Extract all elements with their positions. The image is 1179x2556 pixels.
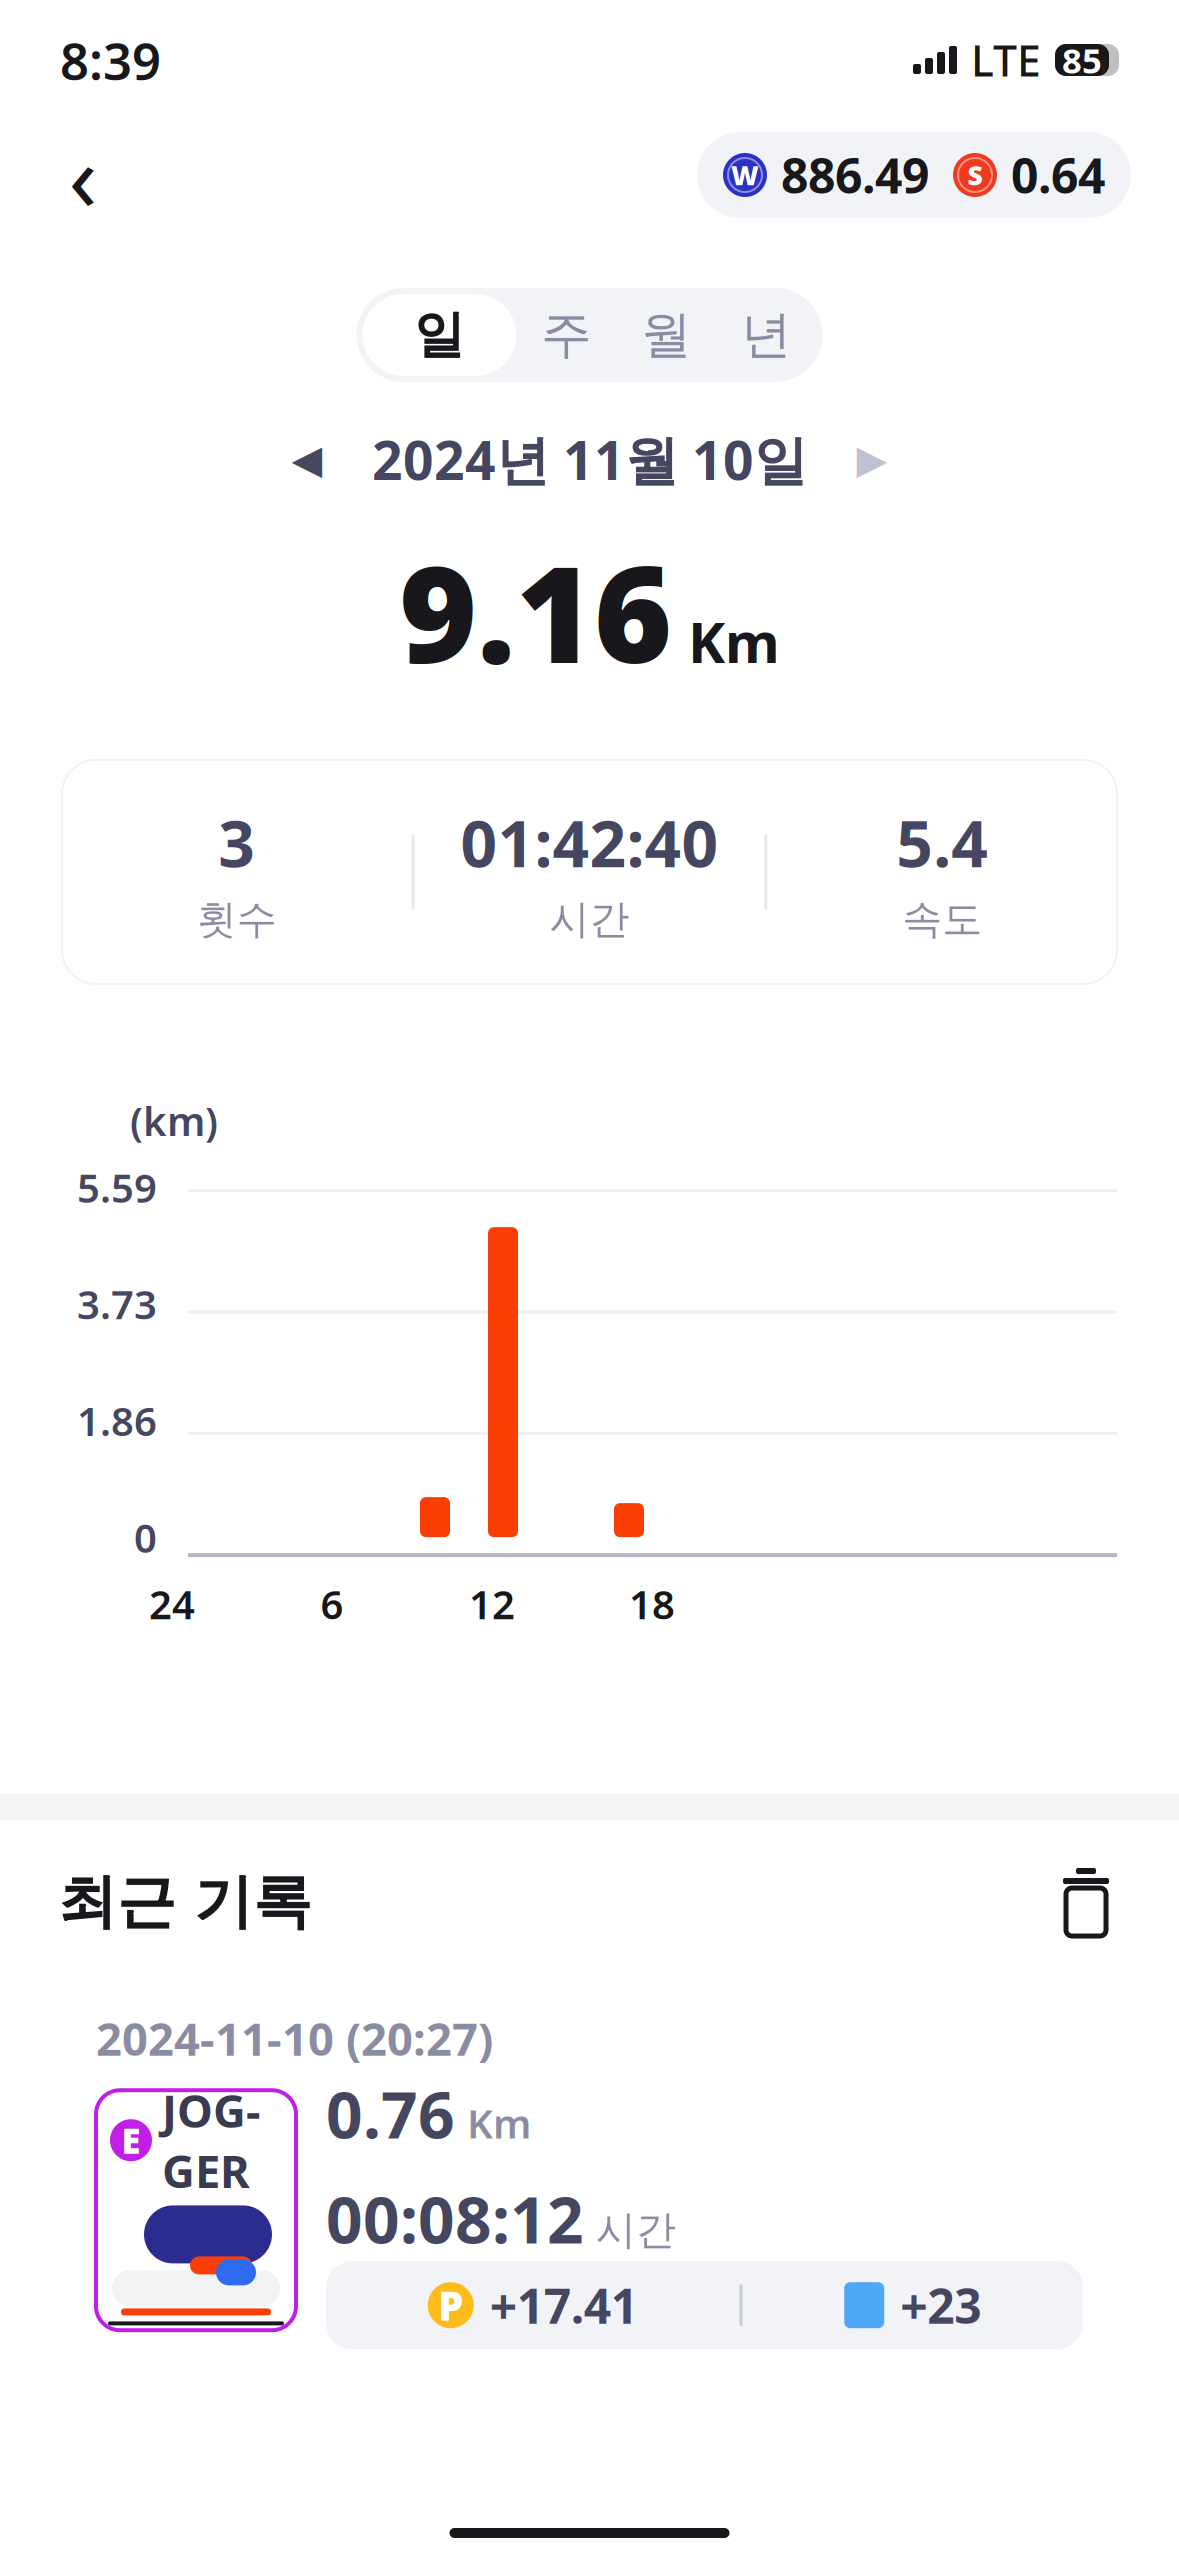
- staticText: 18: [629, 1577, 675, 1630]
- staticText: 9.16: [399, 523, 672, 700]
- staticText: ▶: [856, 437, 887, 482]
- staticText: +17.41: [490, 2273, 638, 2337]
- staticText: 0.76: [326, 2071, 455, 2156]
- button[interactable]: Back: [48, 135, 118, 215]
- staticText: ‹: [68, 113, 97, 237]
- staticText: 시간: [596, 2206, 676, 2255]
- staticText: 1.86: [77, 1394, 157, 1447]
- button[interactable]: 2024-11-10 (20:27): [62, 1970, 1117, 2364]
- staticText: LTE: [971, 32, 1041, 88]
- staticText: +23: [900, 2273, 981, 2337]
- staticText: 년: [741, 304, 792, 366]
- button[interactable]: Next day: [837, 424, 907, 494]
- button[interactable]: 주: [516, 294, 616, 376]
- staticText: 5.59: [77, 1161, 157, 1214]
- staticText: 시간: [549, 895, 629, 944]
- staticText: 12: [469, 1577, 515, 1630]
- button[interactable]: 일: [362, 294, 516, 376]
- staticText: 주: [541, 304, 592, 366]
- staticText: 8:39: [60, 26, 161, 94]
- staticText: 일: [414, 304, 465, 366]
- staticText: S: [967, 157, 982, 193]
- staticText: E: [121, 2117, 140, 2163]
- button[interactable]: 월: [616, 294, 716, 376]
- button[interactable]: Previous day: [272, 424, 342, 494]
- staticText: 886.49: [781, 143, 929, 207]
- staticText: 최근 기록: [58, 1866, 312, 1938]
- button[interactable]: 년: [716, 294, 816, 376]
- staticText: 85: [1062, 37, 1102, 83]
- button[interactable]: W: [697, 132, 1131, 218]
- staticText: 01:42:40: [460, 800, 718, 885]
- staticText: W: [731, 157, 759, 193]
- staticText: P: [438, 2279, 463, 2332]
- staticText: JOGGER: [162, 2080, 261, 2200]
- staticText: 24: [149, 1577, 195, 1630]
- staticText: 5.4: [896, 800, 988, 885]
- staticText: Km: [688, 604, 780, 679]
- staticText: Km: [467, 2096, 531, 2150]
- staticText: 횟수: [197, 895, 277, 944]
- button[interactable]: Delete records: [1051, 1864, 1121, 1940]
- staticText: 속도: [902, 895, 982, 944]
- staticText: ◀: [291, 437, 322, 482]
- staticText: 3: [218, 800, 255, 885]
- staticText: 0.64: [1011, 143, 1105, 207]
- staticText: (km): [130, 1094, 218, 1147]
- staticText: 3.73: [77, 1277, 157, 1330]
- staticText: 00:08:12: [326, 2176, 584, 2261]
- staticText: 6: [320, 1577, 343, 1630]
- staticText: 2024-11-10 (20:27): [96, 2008, 493, 2068]
- staticText: 0: [134, 1511, 157, 1564]
- staticText: 2024년 11월 10일: [372, 424, 807, 495]
- staticText: 월: [641, 304, 692, 366]
